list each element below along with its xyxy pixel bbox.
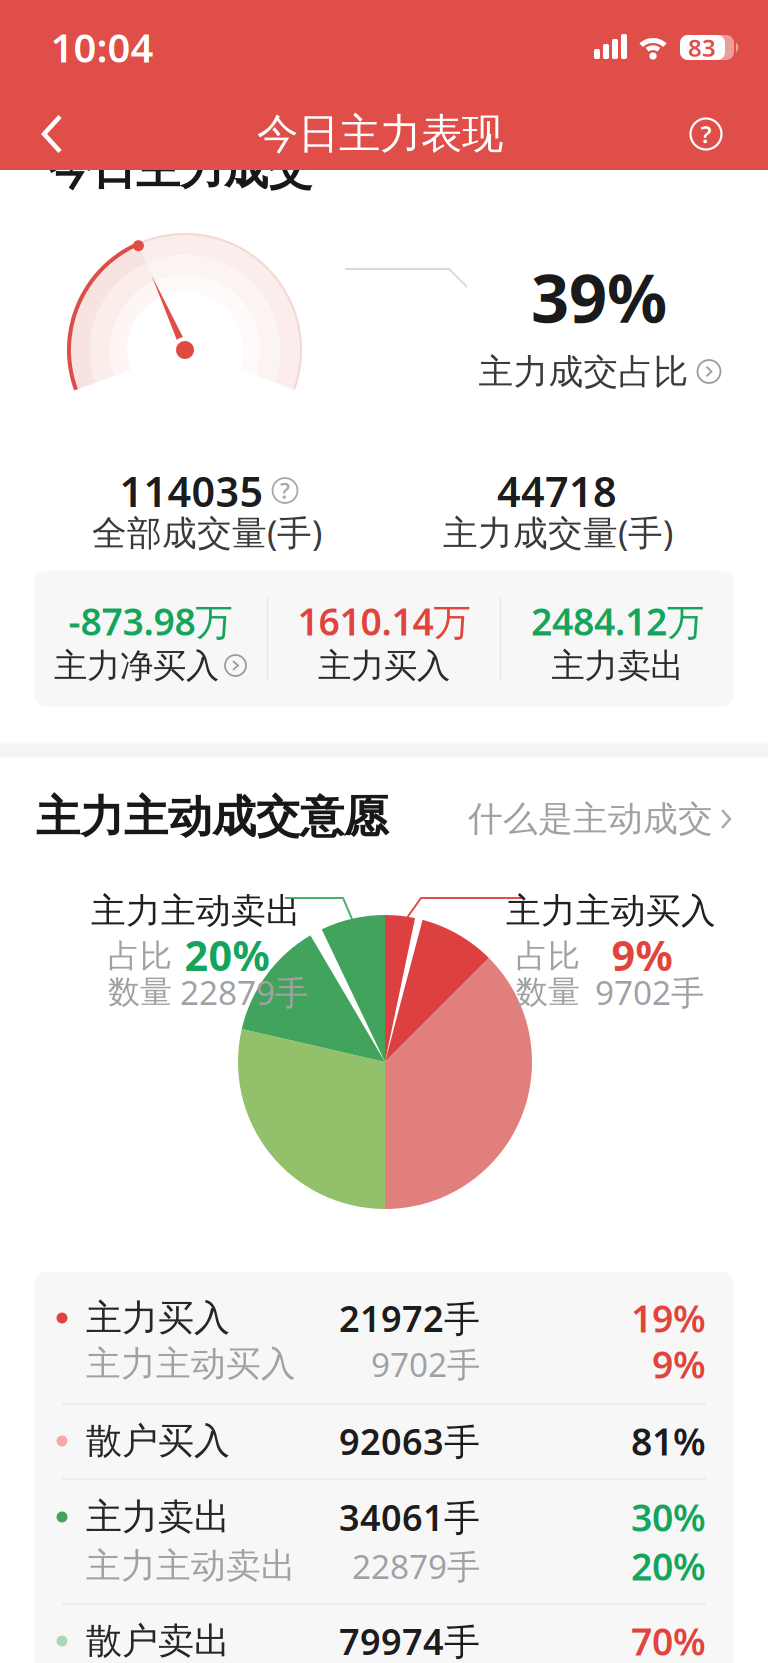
staticText: 主力成交量(手) <box>443 509 673 555</box>
staticText: 什么是主动成交 <box>468 798 713 840</box>
staticText: 主力买入 <box>318 645 450 686</box>
staticText: 散户买入 <box>86 1419 230 1463</box>
staticText: 主力主动买入 <box>506 890 716 932</box>
staticText: 主力主动买入 <box>86 1343 296 1385</box>
button[interactable]: 什么是主动成交 <box>452 798 732 840</box>
staticText: 数量 <box>108 972 172 1012</box>
staticText: ? <box>700 118 711 150</box>
staticText: 主力主动卖出 <box>91 890 301 932</box>
staticText: 39% <box>531 253 667 341</box>
staticText: 今日主力表现 <box>257 109 503 159</box>
staticText: 44718 <box>497 464 617 518</box>
staticText: 今日主力成交 <box>48 142 312 196</box>
staticText: 22879手 <box>180 970 308 1014</box>
staticText: 主力成交占比 <box>478 351 688 393</box>
staticText: 81% <box>631 1416 706 1466</box>
staticText: 主力买入 <box>86 1296 230 1340</box>
staticText: 20% <box>631 1541 706 1591</box>
staticText: -873.98万 <box>68 596 232 646</box>
staticText: 92063手 <box>339 1417 480 1465</box>
staticText: 114035 <box>119 464 263 518</box>
staticText: 9% <box>611 928 672 982</box>
staticText: 主力主动成交意愿 <box>36 790 388 844</box>
staticText: 数量 <box>516 972 580 1012</box>
staticText: 34061手 <box>339 1493 480 1541</box>
staticText: 20% <box>184 928 269 982</box>
staticText: 主力卖出 <box>86 1495 230 1539</box>
button[interactable]: About total volume <box>119 464 298 518</box>
staticText: 主力净买入 <box>54 645 219 686</box>
staticText: 9% <box>652 1339 706 1389</box>
staticText: 22879手 <box>352 1544 480 1588</box>
staticText: 10:04 <box>50 20 153 73</box>
staticText: 主力主动卖出 <box>86 1545 296 1587</box>
staticText: 21972手 <box>339 1294 480 1342</box>
staticText: 83 <box>688 32 716 63</box>
staticText: 9702手 <box>595 970 704 1014</box>
staticText: 2484.12万 <box>531 596 704 646</box>
staticText: 散户卖出 <box>86 1619 230 1663</box>
staticText: 19% <box>631 1293 706 1343</box>
staticText: ? <box>280 476 290 505</box>
staticText: 70% <box>631 1616 706 1663</box>
staticText: 1610.14万 <box>297 596 470 646</box>
staticText: 30% <box>631 1492 706 1542</box>
staticText: 9702手 <box>371 1342 480 1386</box>
staticText: 主力卖出 <box>551 645 683 686</box>
staticText: 占比 <box>516 936 580 976</box>
button[interactable]: 主力净买入 <box>54 645 247 686</box>
button[interactable]: 主力成交占比 <box>478 351 721 393</box>
staticText: 79974手 <box>339 1617 480 1663</box>
staticText: 全部成交量(手) <box>92 509 322 555</box>
staticText: 占比 <box>108 936 172 976</box>
button[interactable]: Help <box>673 102 739 166</box>
button[interactable]: Back <box>22 101 82 165</box>
